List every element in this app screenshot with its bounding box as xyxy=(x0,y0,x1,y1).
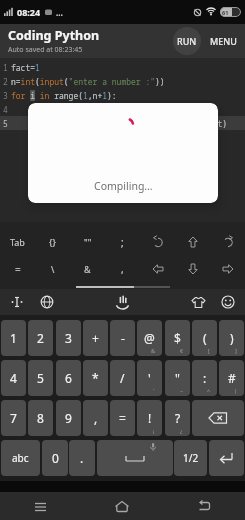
button[interactable]: ? xyxy=(165,400,190,436)
button[interactable]: ! xyxy=(137,400,162,436)
button[interactable]: 1/2 xyxy=(174,440,207,476)
button[interactable] xyxy=(175,255,210,282)
button[interactable]: MENU xyxy=(210,35,237,47)
button[interactable] xyxy=(210,255,245,282)
staticText: | xyxy=(234,387,238,394)
staticText: 08:24 xyxy=(17,6,41,18)
button[interactable]: = xyxy=(0,255,35,282)
staticText: print("factorial of number is :",fact) xyxy=(11,118,227,129)
staticText: @ xyxy=(144,330,155,346)
button[interactable]: abc xyxy=(1,440,40,476)
button[interactable]: = xyxy=(110,400,135,436)
staticText: * xyxy=(92,370,99,386)
button[interactable]: $ xyxy=(165,320,190,356)
button[interactable]: # xyxy=(219,360,244,396)
button[interactable]: @ xyxy=(137,320,162,356)
staticText: . xyxy=(80,450,84,466)
button[interactable] xyxy=(163,492,245,520)
button[interactable]: . xyxy=(69,440,95,476)
button[interactable]: {} xyxy=(35,228,70,255)
staticText: ? xyxy=(175,410,181,426)
button[interactable] xyxy=(140,228,175,255)
staticText: & xyxy=(151,347,156,354)
staticText: ! xyxy=(148,410,152,426)
button[interactable] xyxy=(216,290,240,314)
staticText: 5 xyxy=(37,370,44,386)
button[interactable]: & xyxy=(70,255,105,282)
button[interactable] xyxy=(109,289,135,315)
button[interactable]: , xyxy=(105,255,140,282)
button[interactable]: \ xyxy=(35,255,70,282)
staticText: 1/2 xyxy=(183,451,199,465)
button[interactable]: 0 xyxy=(42,440,68,476)
button[interactable]: + xyxy=(83,320,108,356)
button[interactable]: RUN xyxy=(173,27,201,55)
staticText: 3 xyxy=(3,90,8,101)
button[interactable]: , xyxy=(83,400,108,436)
staticText: RUN xyxy=(177,35,197,47)
staticText: {} xyxy=(49,236,56,248)
button[interactable]: 5 xyxy=(28,360,53,396)
button[interactable] xyxy=(186,290,210,314)
button[interactable]: ( xyxy=(192,320,217,356)
staticText: 7 xyxy=(10,410,17,426)
staticText: n=int(input("enter a number :")) xyxy=(11,76,165,87)
staticText: abc xyxy=(12,451,29,465)
button[interactable]: * xyxy=(83,360,108,396)
button[interactable]: 4 xyxy=(1,360,26,396)
staticText: ^ xyxy=(207,387,211,394)
button[interactable]: 7 xyxy=(1,400,26,436)
staticText: … xyxy=(56,7,63,18)
button[interactable]: : xyxy=(192,360,217,396)
button[interactable]: "" xyxy=(70,228,105,255)
staticText: , xyxy=(94,410,98,426)
button[interactable]: / xyxy=(110,360,135,396)
button[interactable] xyxy=(81,492,163,520)
button[interactable]: ; xyxy=(105,228,140,255)
staticText: / xyxy=(120,370,125,386)
staticText: 4 xyxy=(10,370,17,386)
staticText: = xyxy=(15,262,21,276)
button[interactable] xyxy=(35,290,59,314)
staticText: ; xyxy=(121,235,124,249)
button[interactable] xyxy=(192,400,244,436)
button[interactable]: 9 xyxy=(56,400,81,436)
staticText: MENU xyxy=(210,35,237,47)
button[interactable] xyxy=(209,440,244,476)
staticText: ~ xyxy=(180,387,184,394)
staticText: Tab xyxy=(10,236,25,248)
staticText: Auto saved at 08:23:45 xyxy=(8,45,83,55)
button[interactable]: 3 xyxy=(56,320,81,356)
staticText: "" xyxy=(84,236,92,248)
staticText: ` xyxy=(153,387,155,394)
button[interactable] xyxy=(5,290,29,314)
button[interactable] xyxy=(175,228,210,255)
staticText: $ xyxy=(174,330,181,346)
staticText: 6 xyxy=(65,370,72,386)
button[interactable]: " xyxy=(165,360,190,396)
staticText: fact=fact*i xyxy=(11,104,83,115)
staticText: : xyxy=(203,370,207,386)
button[interactable]: 2 xyxy=(28,320,53,356)
staticText: [ xyxy=(208,347,210,354)
staticText: # xyxy=(228,370,236,386)
button[interactable]: - xyxy=(110,320,135,356)
button[interactable]: Tab xyxy=(0,228,35,255)
staticText: 1 xyxy=(10,330,17,346)
button[interactable] xyxy=(210,228,245,255)
staticText: € xyxy=(180,347,184,354)
staticText: ( xyxy=(203,330,207,346)
button[interactable]: 6 xyxy=(56,360,81,396)
staticText: 9 xyxy=(65,410,72,426)
button[interactable] xyxy=(140,255,175,282)
button[interactable] xyxy=(97,440,173,476)
button[interactable]: ) xyxy=(219,320,244,356)
staticText: 5 xyxy=(3,118,8,129)
staticText: fact=1 xyxy=(11,62,40,73)
staticText: ¿ xyxy=(180,427,183,434)
button[interactable]: 8 xyxy=(28,400,53,436)
button[interactable]: 1 xyxy=(1,320,26,356)
button[interactable]: ' xyxy=(137,360,162,396)
button[interactable] xyxy=(0,492,81,520)
staticText: = xyxy=(119,410,126,426)
